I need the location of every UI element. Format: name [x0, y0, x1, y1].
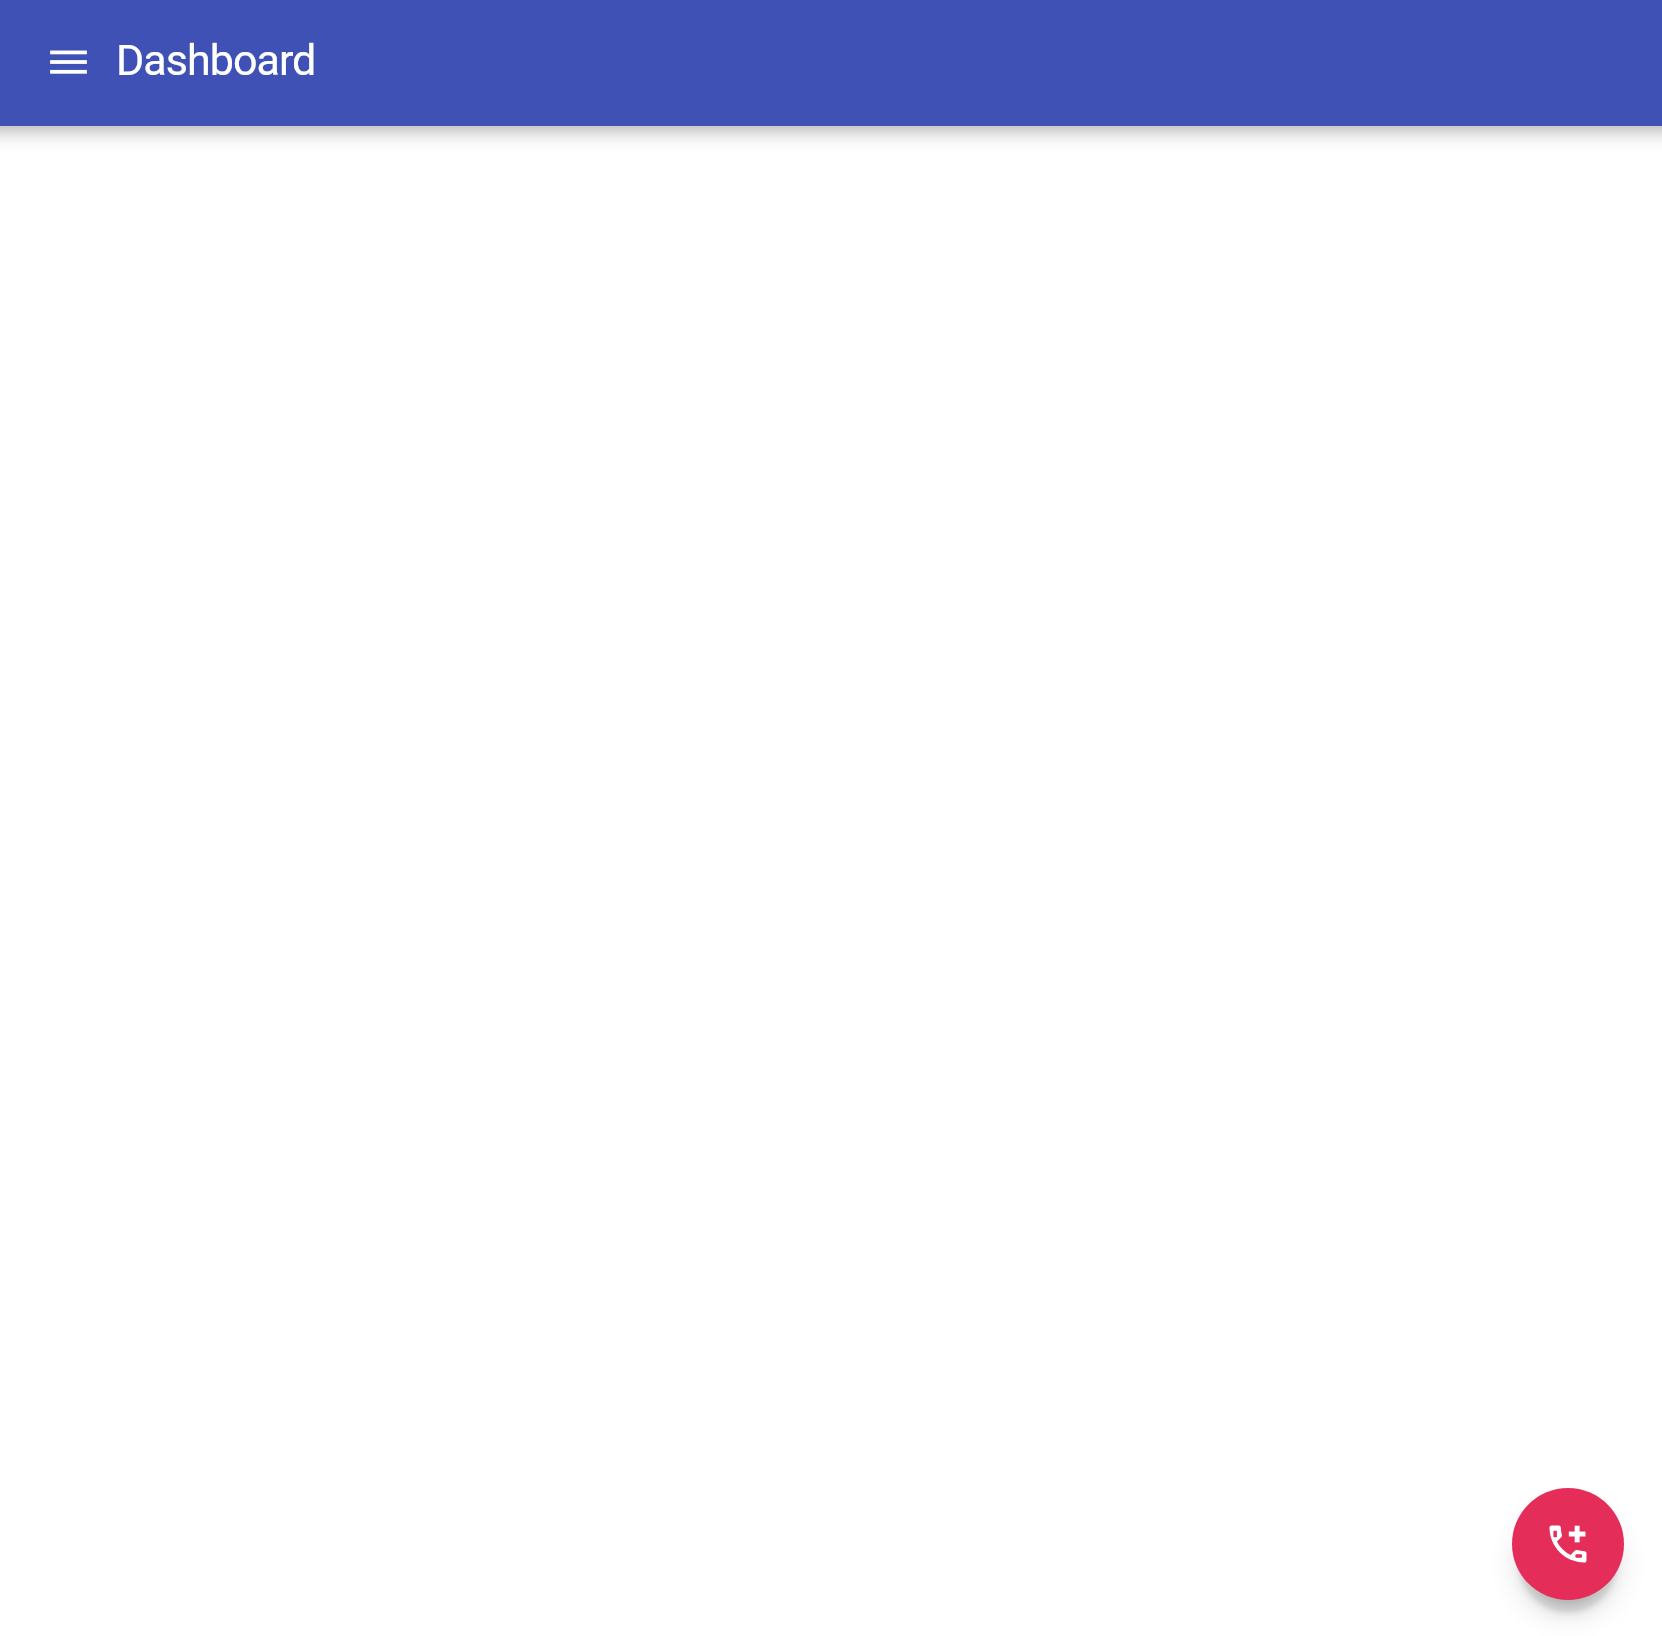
button[interactable]: Open navigation drawer [31, 24, 105, 98]
staticText: Dashboard [116, 35, 316, 85]
button[interactable]: Add call [1512, 1488, 1624, 1600]
